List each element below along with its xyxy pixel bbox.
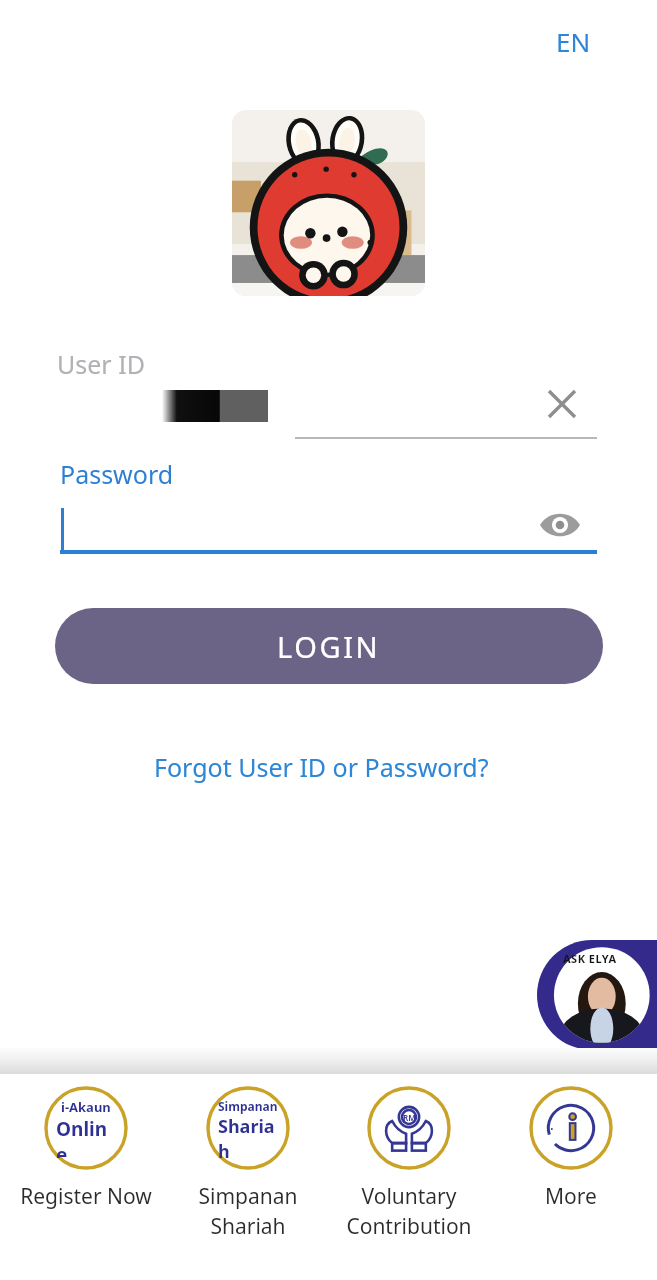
staticText: Online (56, 1116, 116, 1158)
staticText: RM (403, 1112, 416, 1123)
button[interactable]: Voluntary Contribution (334, 1086, 484, 1240)
staticText: EN (556, 24, 591, 59)
staticText: ASK ELYA (563, 951, 617, 966)
button[interactable]: Register Now (11, 1086, 161, 1211)
staticText: LOGIN (277, 627, 381, 666)
button[interactable]: Forgot User ID or Password? (144, 744, 499, 790)
staticText: Register Now (20, 1182, 152, 1211)
staticText: User ID (57, 347, 145, 381)
staticText: Forgot User ID or Password? (154, 750, 489, 784)
staticText: Simpanan (218, 1098, 278, 1114)
button[interactable]: Ask Elya assistant (537, 940, 657, 1050)
staticText: i-Akaun (61, 1098, 111, 1116)
button[interactable]: Clear user ID (536, 378, 588, 430)
button[interactable]: More (496, 1086, 646, 1211)
staticText: Password (60, 457, 174, 491)
staticText: Shariah (218, 1114, 278, 1158)
button[interactable]: EN (548, 18, 599, 65)
staticText: Voluntary Contribution (346, 1182, 472, 1240)
button[interactable]: Simpanan Shariah (173, 1086, 323, 1240)
staticText: More (545, 1182, 597, 1211)
button[interactable]: Show password (534, 499, 586, 551)
staticText: Simpanan Shariah (198, 1182, 298, 1240)
button[interactable]: LOGIN (55, 608, 603, 684)
